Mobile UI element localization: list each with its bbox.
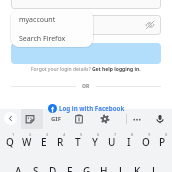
button[interactable]: F <box>61 147 78 172</box>
staticText: J <box>119 164 122 172</box>
staticText: Y <box>92 135 98 149</box>
button[interactable]: More options <box>131 113 143 125</box>
staticText: 5 <box>80 132 83 137</box>
button[interactable]: S <box>27 147 44 172</box>
staticText: Forgot your login details? <box>31 66 92 73</box>
staticText: R <box>57 135 64 149</box>
button[interactable]: 6 <box>86 129 103 147</box>
staticText: Log in with Facebook <box>59 104 125 112</box>
button[interactable]: Show password <box>145 20 155 30</box>
staticText: W <box>22 135 32 149</box>
button[interactable]: GIF <box>48 114 64 124</box>
staticText: O <box>142 135 150 149</box>
staticText: 7 <box>114 132 117 137</box>
button[interactable]: 5 <box>69 129 86 147</box>
staticText: 4 <box>63 132 66 137</box>
button[interactable]: H <box>95 147 112 172</box>
button[interactable]: L <box>146 147 163 172</box>
button[interactable]: 3 <box>35 129 52 147</box>
staticText: T <box>75 135 81 149</box>
button[interactable]: Show password <box>11 15 161 35</box>
staticText: A <box>15 164 22 172</box>
button[interactable]: Clipboard <box>73 113 85 125</box>
staticText: 6 <box>97 132 100 137</box>
staticText: GIF <box>51 115 61 123</box>
button[interactable]: Stickers <box>24 113 36 125</box>
staticText: E <box>41 135 47 149</box>
button[interactable]: 7 <box>103 129 120 147</box>
button[interactable]: Back <box>4 112 17 125</box>
staticText: L <box>152 164 158 172</box>
staticText: 0 <box>165 132 168 137</box>
staticText: 1 <box>12 132 15 137</box>
button[interactable]: Search Firefox <box>11 28 93 47</box>
button[interactable]: Get help logging in. <box>92 66 141 73</box>
button[interactable]: Settings <box>99 113 111 125</box>
button[interactable] <box>11 43 161 64</box>
button[interactable]: Voice input <box>154 113 166 125</box>
staticText: 9 <box>148 132 151 137</box>
button[interactable]: 9 <box>137 129 154 147</box>
button[interactable]: G <box>78 147 95 172</box>
staticText: 3 <box>46 132 49 137</box>
staticText: Search Firefox <box>19 34 66 44</box>
staticText: S <box>33 164 39 172</box>
button[interactable]: K <box>129 147 146 172</box>
button[interactable]: Log in with Facebook <box>0 101 172 113</box>
button[interactable]: A <box>9 147 27 172</box>
staticText: K <box>134 164 141 172</box>
staticText: I <box>127 135 131 149</box>
staticText: U <box>108 135 116 149</box>
staticText: H <box>100 164 108 172</box>
button[interactable]: D <box>44 147 61 172</box>
button[interactable]: 1 <box>1 129 18 147</box>
staticText: D <box>49 164 57 172</box>
staticText: P <box>159 135 166 149</box>
staticText: 8 <box>131 132 134 137</box>
button[interactable]: J <box>112 147 129 172</box>
button[interactable]: 8 <box>120 129 137 147</box>
button[interactable]: myaccount <box>11 9 93 28</box>
staticText: myaccount <box>19 15 56 25</box>
button[interactable] <box>11 0 161 9</box>
staticText: G <box>83 164 91 172</box>
staticText: 2 <box>29 132 32 137</box>
button[interactable]: 0 <box>154 129 171 147</box>
staticText: F <box>67 164 73 172</box>
staticText: Q <box>6 135 14 149</box>
button[interactable]: 2 <box>18 129 35 147</box>
button[interactable]: 4 <box>52 129 69 147</box>
staticText: OR <box>82 83 90 90</box>
